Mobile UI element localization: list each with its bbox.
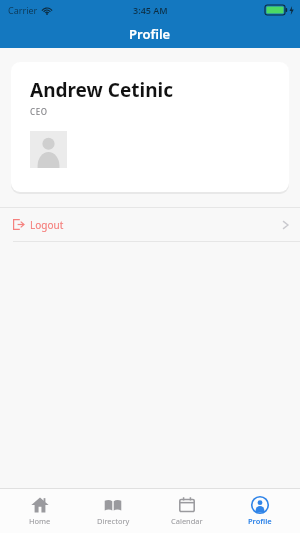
- staticText: Profile: [129, 25, 171, 43]
- button[interactable]: Logout: [0, 208, 300, 241]
- staticText: CEO: [30, 106, 48, 117]
- staticText: Andrew Cetinic: [30, 77, 174, 103]
- button[interactable]: Calendar: [154, 489, 220, 533]
- button[interactable]: Home: [7, 489, 73, 533]
- staticText: Directory: [97, 516, 130, 526]
- button[interactable]: Directory: [80, 489, 146, 533]
- staticText: Home: [29, 516, 51, 526]
- staticText: Profile: [248, 516, 272, 526]
- button[interactable]: Andrew Cetinic: [11, 62, 289, 192]
- staticText: Calendar: [171, 516, 203, 526]
- staticText: Logout: [30, 218, 64, 232]
- staticText: Carrier: [8, 4, 38, 16]
- button[interactable]: Profile: [227, 489, 293, 533]
- staticText: 3:45 AM: [133, 4, 168, 16]
